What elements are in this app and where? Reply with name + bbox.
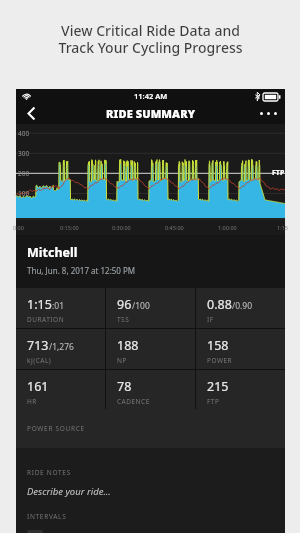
staticText: :01 bbox=[52, 300, 65, 312]
staticText: 215 bbox=[207, 378, 229, 395]
staticText: 0:15:00 bbox=[60, 224, 79, 231]
staticText: NP bbox=[117, 356, 127, 365]
staticText: 161 bbox=[27, 378, 49, 395]
staticText: 400 bbox=[18, 129, 30, 138]
button[interactable]: Back bbox=[16, 103, 46, 124]
staticText: DURATION bbox=[27, 315, 65, 324]
staticText: 0.88 bbox=[207, 296, 232, 313]
staticText: 1:00:00 bbox=[218, 224, 237, 231]
staticText: 0:45:00 bbox=[165, 224, 184, 231]
staticText: 188 bbox=[117, 337, 139, 354]
staticText: 300 bbox=[18, 149, 30, 158]
staticText: HR bbox=[27, 397, 37, 406]
button[interactable]: 158 bbox=[196, 329, 285, 369]
staticText: 1:15 bbox=[27, 296, 52, 313]
staticText: 78 bbox=[117, 378, 132, 395]
staticText: 1:15 bbox=[277, 224, 288, 231]
staticText: kJ(CAL) bbox=[27, 356, 52, 365]
button[interactable]: 96 bbox=[106, 288, 195, 328]
staticText: FTP bbox=[207, 397, 220, 406]
staticText: Track Your Cycling Progress bbox=[58, 38, 243, 57]
staticText: 713 bbox=[27, 337, 49, 354]
staticText: /100 bbox=[132, 300, 150, 312]
button[interactable]: 0.88 bbox=[196, 288, 285, 328]
staticText: INTERVALS bbox=[27, 512, 67, 521]
staticText: 100 bbox=[18, 189, 30, 198]
staticText: /0.90 bbox=[232, 300, 253, 312]
staticText: RIDE SUMMARY bbox=[106, 106, 196, 121]
staticText: 96 bbox=[117, 296, 132, 313]
staticText: FTP bbox=[272, 168, 285, 178]
staticText: POWER SOURCE bbox=[27, 424, 85, 433]
staticText: 158 bbox=[207, 337, 229, 354]
staticText: POWER bbox=[207, 356, 233, 365]
button[interactable]: 215 bbox=[196, 370, 285, 409]
staticText: 0:00 bbox=[13, 224, 24, 231]
button[interactable]: 713 bbox=[16, 329, 105, 369]
staticText: Thu, Jun. 8, 2017 at 12:50 PM bbox=[27, 265, 136, 276]
staticText: View Critical Ride Data and bbox=[61, 21, 240, 40]
staticText: 0:30:00 bbox=[112, 224, 131, 231]
button[interactable]: 1:15 bbox=[16, 288, 105, 328]
staticText: TSS bbox=[117, 315, 130, 324]
button[interactable]: More options bbox=[251, 103, 285, 124]
staticText: CADENCE bbox=[117, 397, 150, 406]
button[interactable]: 188 bbox=[106, 329, 195, 369]
staticText: 11:42 AM bbox=[134, 91, 168, 101]
staticText: 200 bbox=[18, 169, 30, 178]
button[interactable]: 161 bbox=[16, 370, 105, 409]
button[interactable]: POWER SOURCE bbox=[16, 409, 285, 448]
staticText: Mitchell bbox=[27, 244, 78, 261]
button[interactable]: 78 bbox=[106, 370, 195, 409]
button[interactable]: Describe your ride... bbox=[27, 485, 111, 498]
staticText: RIDE NOTES bbox=[27, 468, 71, 477]
staticText: /1,276 bbox=[49, 341, 74, 353]
staticText: IF bbox=[207, 315, 214, 324]
